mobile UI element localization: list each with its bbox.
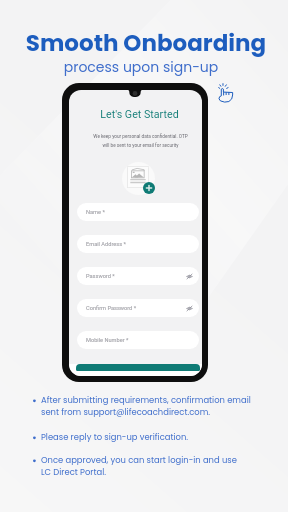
staticText: Smooth Onboarding	[2, 27, 288, 59]
staticText: Password *	[86, 273, 115, 280]
staticText: Let's Get Started	[73, 108, 202, 121]
button[interactable]: Tap	[215, 82, 236, 103]
button[interactable]: Upload photo	[127, 166, 149, 188]
staticText: Confirm Password *	[86, 305, 137, 312]
staticText: Email Address *	[86, 241, 126, 248]
staticText: Once approved, you can start login-in an…	[41, 454, 237, 478]
button[interactable]: Add photo	[143, 182, 155, 194]
staticText: After submitting requirements, confirmat…	[41, 394, 251, 418]
staticText: process upon sign-up	[0, 57, 285, 77]
staticText: Name *	[86, 209, 105, 216]
staticText: Please reply to sign-up verification.	[41, 431, 189, 443]
staticText: Mobile Number *	[86, 337, 129, 344]
button[interactable]	[76, 364, 200, 371]
button[interactable]: Password *	[77, 267, 199, 285]
button[interactable]: Confirm Password *	[77, 299, 199, 317]
button[interactable]: Name *	[77, 203, 199, 221]
button[interactable]: Email Address *	[77, 235, 199, 253]
staticText: We keep your personal data confidential.…	[74, 134, 202, 148]
button[interactable]: Mobile Number *	[77, 331, 199, 349]
